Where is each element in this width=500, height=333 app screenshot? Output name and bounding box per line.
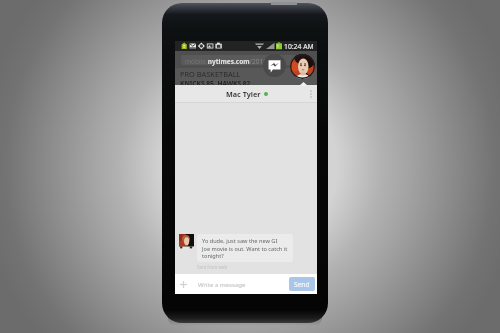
button[interactable]: Mac Tyler [175,85,317,103]
staticText: mobile.nytimes.com/2011/04/ [185,57,280,66]
button[interactable]: Add attachment [175,274,192,294]
staticText: KNICKS 85, HAWKS 82 [180,79,251,88]
staticText: Sent from web [197,264,228,270]
button[interactable]: Messenger chat head [263,54,286,77]
staticText: Write a message [198,280,289,288]
button[interactable]: Mac Tyler avatar [290,54,315,79]
staticText: Mac Tyler [226,89,261,99]
button[interactable]: Send [289,277,315,291]
staticText: Send [294,280,310,289]
staticText: PRO BASKETBALL [180,69,241,79]
staticText: 10:24 AM [284,42,314,51]
staticText: Yo dude, just saw the new GI Joe movie i… [202,237,288,259]
button[interactable] [181,55,296,65]
